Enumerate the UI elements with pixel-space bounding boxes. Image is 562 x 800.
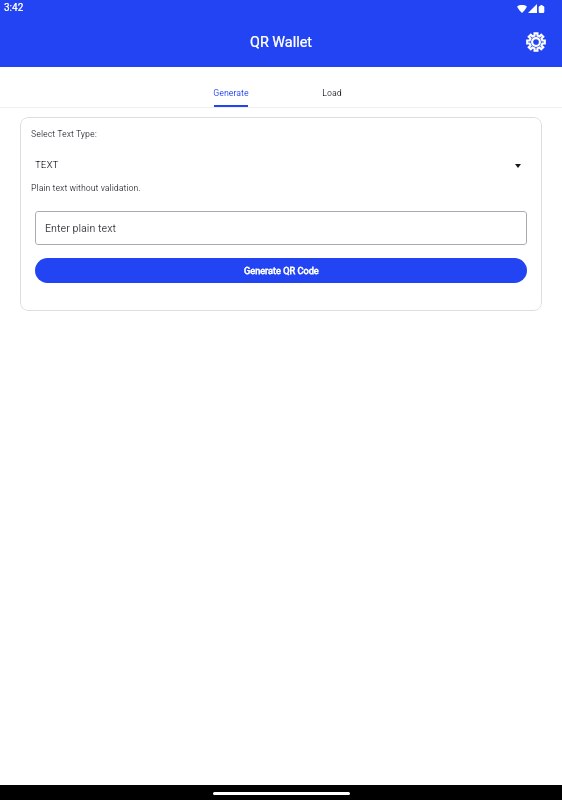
staticText: Plain text without validation. — [31, 183, 141, 193]
button[interactable]: Generate — [180, 67, 281, 107]
button[interactable]: Enter plain text — [35, 211, 527, 245]
staticText: Select Text Type: — [31, 129, 97, 139]
button[interactable]: TEXT — [31, 155, 531, 173]
staticText: Enter plain text — [45, 222, 116, 235]
staticText: 3:42 — [4, 2, 24, 14]
button[interactable]: Generate QR Code — [35, 258, 527, 283]
staticText: Generate — [213, 88, 249, 98]
button[interactable]: Load — [281, 67, 382, 107]
staticText: QR Wallet — [250, 34, 313, 51]
staticText: Load — [322, 88, 342, 98]
staticText: TEXT — [35, 159, 59, 170]
staticText: Generate QR Code — [244, 265, 319, 276]
button[interactable]: Settings — [519, 25, 553, 59]
